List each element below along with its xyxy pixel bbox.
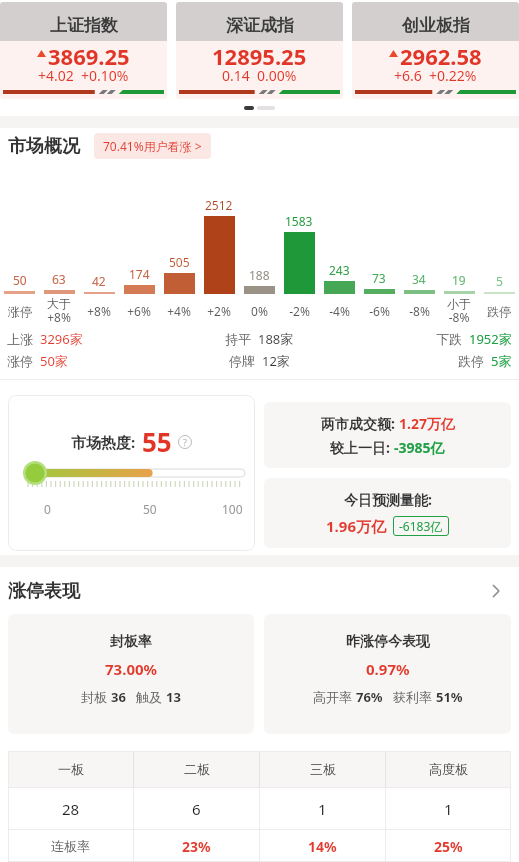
staticText: 今日预测量能: [344, 490, 432, 509]
staticText: 跌停 [487, 304, 511, 319]
staticText: 涨停 [7, 353, 33, 369]
staticText: 高度板 [429, 761, 468, 777]
staticText: 1952家 [469, 330, 512, 348]
staticText: 触及 [136, 688, 166, 706]
staticText: 1 [444, 799, 453, 819]
staticText: 连板率 [51, 838, 90, 854]
button[interactable]: 深证成指 [176, 2, 343, 99]
button[interactable]: 封板率 [8, 614, 254, 734]
staticText: 0.14 0.00% [222, 66, 297, 85]
staticText: 13 [166, 688, 181, 706]
staticText: 封板 [81, 688, 111, 706]
staticText: -2% [289, 303, 310, 319]
staticText: 2512 [205, 197, 233, 213]
staticText: 1583 [285, 213, 313, 229]
staticText: -4% [329, 303, 350, 319]
button[interactable]: 两市成交额: [264, 402, 511, 468]
staticText: 73.00% [105, 659, 158, 679]
staticText: 70.41%用户看涨 > [103, 138, 202, 154]
staticText: +4.02 +0.10% [38, 66, 129, 85]
staticText: ? [183, 436, 187, 448]
staticText: 下跌 [436, 331, 462, 347]
staticText: 一板 [58, 761, 84, 777]
staticText: 25% [434, 837, 463, 856]
staticText: 停牌 [229, 353, 255, 369]
button[interactable]: 今日预测量能: [264, 478, 511, 548]
staticText: 36 [111, 688, 126, 706]
staticText: 34 [412, 271, 426, 287]
staticText: +8% [87, 303, 111, 319]
staticText: 188 [249, 267, 270, 283]
staticText: 50家 [40, 352, 68, 370]
staticText: 两市成交额: [321, 414, 399, 433]
staticText: 1.96万亿 [326, 516, 386, 536]
staticText: 1.27万亿 [399, 414, 455, 433]
staticText: 较上一日: [330, 438, 394, 457]
staticText: 23% [182, 837, 211, 856]
staticText: 28 [62, 799, 80, 819]
staticText: 73 [372, 270, 386, 286]
staticText: 深证成指 [226, 15, 294, 36]
staticText: 二板 [184, 761, 210, 777]
staticText: 5家 [491, 352, 512, 370]
staticText: +4% [167, 303, 191, 319]
staticText: 243 [329, 262, 350, 278]
staticText: 51% [436, 688, 463, 706]
staticText: 创业板指 [402, 15, 470, 36]
staticText: 涨停表现 [8, 580, 80, 603]
staticText: 0 [44, 501, 51, 517]
staticText: 55 [142, 424, 172, 459]
staticText: 100 [222, 501, 243, 517]
button[interactable]: 上证指数 [0, 2, 167, 99]
staticText: 上证指数 [50, 15, 118, 36]
staticText: 0% [251, 303, 268, 319]
staticText: -8% [409, 303, 430, 319]
button[interactable]: 涨停表现 [0, 567, 519, 603]
staticText: 获利率 [393, 688, 436, 706]
staticText: 持平 [225, 331, 251, 347]
staticText: 大于 +8% [47, 296, 71, 326]
staticText: -6183亿 [399, 518, 443, 534]
staticText: 封板率 [110, 633, 152, 651]
staticText: 涨停 [8, 304, 32, 319]
staticText: +6.6 +0.22% [394, 66, 477, 85]
staticText: 3869.25 [48, 41, 130, 65]
staticText: 19 [452, 272, 466, 288]
staticText: 505 [169, 254, 190, 270]
staticText: 63 [52, 271, 66, 287]
staticText: 6 [192, 799, 201, 819]
staticText: 174 [129, 266, 150, 282]
staticText: 高开率 [313, 688, 356, 706]
button[interactable]: 创业板指 [352, 2, 519, 99]
staticText: 12895.25 [212, 41, 307, 65]
staticText: 12家 [262, 352, 290, 370]
staticText: 1 [318, 799, 327, 819]
button[interactable]: 70.41%用户看涨 > [94, 133, 211, 159]
staticText: 3296家 [40, 330, 83, 348]
staticText: 三板 [310, 761, 336, 777]
staticText: 跌停 [458, 353, 484, 369]
staticText: -6% [369, 303, 390, 319]
staticText: 0.97% [366, 659, 410, 679]
staticText: 5 [496, 273, 503, 289]
staticText: 76% [356, 688, 383, 706]
staticText: 42 [92, 273, 106, 289]
staticText: 2962.58 [400, 41, 482, 65]
staticText: +2% [207, 303, 231, 319]
button[interactable]: 市场热度: [8, 395, 255, 551]
staticText: 50 [143, 501, 157, 517]
staticText: -3985亿 [394, 438, 445, 457]
staticText: 市场热度: [71, 432, 136, 452]
staticText: 市场概况 [8, 135, 80, 158]
staticText: 昨涨停今表现 [346, 633, 430, 651]
staticText: 上涨 [7, 331, 33, 347]
staticText: 50 [13, 272, 27, 288]
staticText: +6% [127, 303, 151, 319]
staticText: 188家 [258, 330, 294, 348]
staticText: 小于 -8% [447, 296, 471, 326]
staticText: 14% [308, 837, 337, 856]
button[interactable]: 昨涨停今表现 [264, 614, 511, 734]
